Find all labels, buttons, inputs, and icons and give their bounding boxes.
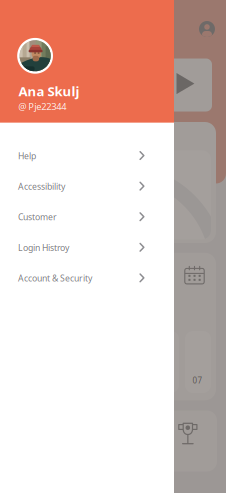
button[interactable]: Help: [0, 139, 174, 170]
button[interactable]: Login Histroy: [0, 231, 174, 262]
staticText: Ana Skulj: [18, 82, 79, 100]
staticText: Help: [18, 150, 36, 162]
button[interactable]: Ana Skulj: [0, 0, 174, 122]
staticText: Customer: [18, 211, 57, 223]
staticText: 07: [192, 375, 202, 386]
button[interactable]: Customer: [0, 201, 174, 231]
staticText: Account & Security: [18, 272, 92, 284]
staticText: @ Pje22344: [18, 100, 66, 113]
staticText: Login Histroy: [18, 242, 69, 253]
button[interactable]: Account & Security: [0, 262, 174, 292]
staticText: Accessibility: [18, 180, 65, 192]
button[interactable]: Accessibility: [0, 170, 174, 201]
